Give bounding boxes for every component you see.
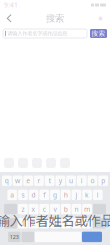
button[interactable]: w — [13, 175, 22, 186]
button[interactable]: x — [29, 204, 38, 214]
button[interactable] — [82, 232, 102, 242]
staticText: u — [69, 176, 73, 185]
staticText: 2 — [32, 219, 36, 228]
staticText: 7 — [85, 219, 89, 228]
button[interactable]: 1 — [18, 218, 28, 228]
staticText: l — [97, 190, 99, 199]
button[interactable]: 搜索 — [90, 29, 107, 38]
staticText: g — [53, 190, 57, 199]
staticText: 搜索 — [46, 13, 64, 24]
staticText: s — [21, 190, 24, 199]
button[interactable]: d — [29, 190, 38, 200]
staticText: m — [84, 205, 90, 214]
button[interactable]: i — [77, 175, 87, 186]
button[interactable]: 2 — [29, 218, 38, 228]
button[interactable]: 123 — [8, 232, 20, 242]
staticText: 请输入作者名字或作品信息 — [7, 30, 67, 37]
button[interactable]: q — [2, 175, 12, 186]
staticText: 4 — [53, 219, 57, 228]
button[interactable]: 3 — [39, 218, 49, 228]
button[interactable]: g — [50, 190, 60, 200]
button[interactable]: b — [61, 204, 70, 214]
button[interactable]: 6 — [71, 218, 81, 228]
button[interactable]: o — [88, 175, 97, 186]
staticText: n — [74, 205, 78, 214]
button[interactable]: More — [94, 10, 107, 27]
button[interactable]: r — [34, 175, 44, 186]
staticText: h — [64, 190, 68, 199]
button[interactable]: n — [71, 204, 81, 214]
staticText: 9:41 — [4, 1, 18, 9]
staticText: 6 — [74, 219, 78, 228]
button[interactable]: v — [50, 204, 60, 214]
staticText: r — [37, 176, 40, 185]
staticText: v — [53, 205, 56, 214]
button[interactable] — [93, 218, 106, 228]
button[interactable]: u — [66, 175, 76, 186]
button[interactable]: 5 — [61, 218, 70, 228]
staticText: d — [32, 190, 36, 199]
staticText: k — [85, 190, 89, 199]
staticText: x — [32, 205, 36, 214]
staticText: 3 — [42, 219, 46, 228]
staticText: f — [43, 190, 45, 199]
button[interactable]: c — [39, 204, 49, 214]
button[interactable]: k — [82, 190, 92, 200]
staticText: 123 — [10, 233, 19, 240]
button[interactable]: j — [71, 190, 81, 200]
button[interactable]: s — [18, 190, 28, 200]
button[interactable]: f — [39, 190, 49, 200]
button[interactable]: 4 — [50, 218, 60, 228]
button[interactable]: h — [61, 190, 70, 200]
staticText: 5 — [64, 219, 68, 228]
button[interactable]: z — [18, 204, 28, 214]
button[interactable]: p — [98, 175, 108, 186]
button[interactable]: e — [23, 175, 33, 186]
staticText: y — [59, 176, 62, 185]
button[interactable]: Back — [3, 10, 16, 27]
button[interactable]: a — [7, 190, 17, 200]
staticText: p — [101, 176, 105, 185]
staticText: 搜索 — [91, 29, 105, 38]
staticText: q — [5, 176, 9, 185]
button[interactable] — [4, 218, 17, 228]
staticText: e — [26, 176, 30, 185]
button[interactable]: m — [82, 204, 92, 214]
staticText: a — [10, 190, 14, 199]
staticText: z — [21, 205, 24, 214]
staticText: o — [90, 176, 94, 185]
staticText: 输入作者姓名或作品 — [0, 210, 110, 230]
staticText: j — [75, 190, 77, 199]
staticText: b — [64, 205, 68, 214]
staticText: 1 — [21, 219, 25, 228]
button[interactable]: t — [45, 175, 54, 186]
staticText: t — [49, 176, 51, 185]
staticText: i — [81, 176, 83, 185]
staticText: w — [15, 176, 20, 185]
button[interactable]: 7 — [82, 218, 92, 228]
button[interactable]: y — [55, 175, 65, 186]
staticText: c — [43, 205, 46, 214]
button[interactable]: l — [93, 190, 103, 200]
